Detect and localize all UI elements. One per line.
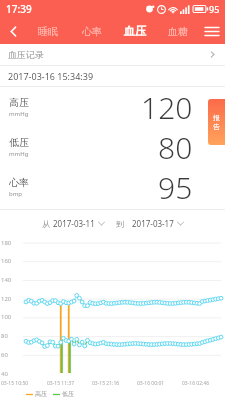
staticText: 高压 [9, 96, 29, 109]
staticText: 100 [1, 313, 12, 321]
button[interactable]: 2017-03-17 [132, 218, 184, 229]
button[interactable]: 血压 [113, 18, 156, 44]
button[interactable]: 睡眠 [26, 18, 70, 44]
staticText: 140 [1, 276, 12, 284]
button[interactable]: 2017-03-11 [53, 218, 105, 229]
staticText: 低压 [62, 390, 74, 398]
staticText: 03-15 11:37 [47, 380, 75, 387]
staticText: 到 [116, 219, 124, 229]
staticText: 告 [213, 122, 220, 131]
staticText: 从 [42, 219, 50, 229]
staticText: mmHg [9, 150, 29, 158]
staticText: 睡眠 [38, 25, 58, 38]
staticText: 2017-03-17 [132, 218, 174, 229]
staticText: 160 [1, 257, 12, 265]
staticText: 03-16 00:01 [137, 380, 165, 387]
button[interactable]: Menu [199, 18, 225, 44]
staticText: 03-16 02:46 [182, 380, 210, 387]
button[interactable]: 心率 [70, 18, 113, 44]
staticText: 17:39 [6, 2, 32, 16]
staticText: 心率 [82, 25, 102, 38]
button[interactable]: 报 [208, 99, 225, 145]
staticText: 120 [1, 295, 12, 303]
staticText: 03-15 21:16 [92, 380, 120, 387]
staticText: mmHg [9, 110, 29, 118]
staticText: 心率 [9, 176, 29, 189]
staticText: 2017-03-16 15:34:39 [8, 70, 94, 82]
staticText: 03-15 10:50 [1, 380, 29, 387]
button[interactable]: 血糖 [156, 18, 199, 44]
staticText: 血压 [124, 24, 146, 38]
staticText: 40 [1, 370, 8, 378]
button[interactable]: Back [0, 18, 26, 44]
staticText: 80 [158, 127, 193, 167]
staticText: 2017-03-11 [53, 218, 95, 229]
staticText: 低压 [9, 136, 29, 149]
staticText: 60 [1, 351, 8, 359]
staticText: 80 [1, 332, 8, 340]
staticText: 95 [158, 167, 193, 207]
staticText: bmp [9, 190, 22, 198]
staticText: 95 [209, 3, 220, 15]
staticText: 报 [213, 113, 220, 122]
button[interactable]: 血压记录 [0, 44, 225, 65]
staticText: 180 [1, 239, 12, 247]
staticText: 血糖 [168, 25, 188, 38]
staticText: 高压 [35, 390, 47, 398]
staticText: 120 [141, 87, 193, 127]
staticText: 血压记录 [8, 49, 44, 60]
